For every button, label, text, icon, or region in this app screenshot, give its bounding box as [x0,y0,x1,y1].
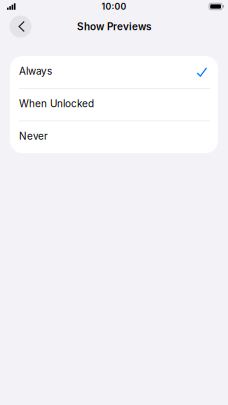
button[interactable]: Always [10,56,218,88]
staticText: When Unlocked [19,98,94,110]
staticText: Never [19,130,48,142]
button[interactable]: Never [10,121,218,153]
button[interactable]: Back [6,12,34,40]
staticText: 10:00 [101,1,126,12]
button[interactable]: When Unlocked [10,89,218,121]
staticText: Show Previews [77,20,151,33]
staticText: Always [19,65,52,77]
